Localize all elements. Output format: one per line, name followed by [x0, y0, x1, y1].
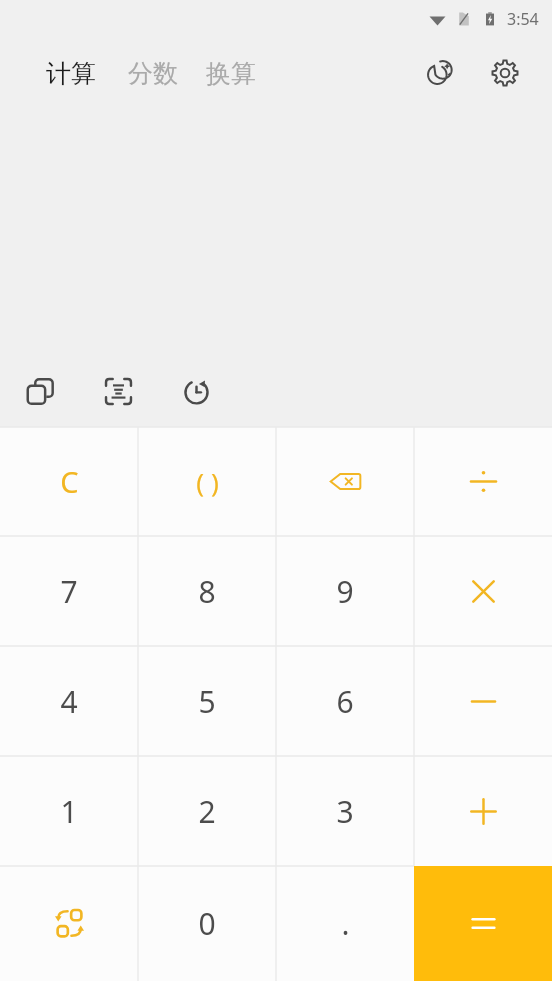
staticText: 3:54	[507, 8, 539, 30]
button[interactable]: 计算	[43, 50, 99, 97]
staticText: 计算	[46, 58, 96, 89]
staticText: 9	[336, 571, 354, 612]
button[interactable]: C	[0, 427, 138, 536]
staticText: 换算	[206, 58, 256, 89]
button[interactable]: 3	[276, 756, 414, 866]
button[interactable]: Divide	[414, 427, 552, 536]
staticText: 8	[198, 571, 216, 612]
button[interactable]: Scan	[90, 363, 147, 420]
staticText: 2	[198, 791, 216, 832]
button[interactable]: 分数	[125, 50, 181, 97]
button[interactable]: 5	[138, 646, 276, 756]
button[interactable]: ( )	[138, 427, 276, 536]
button[interactable]: 6	[276, 646, 414, 756]
button[interactable]: 4	[0, 646, 138, 756]
button[interactable]: 9	[276, 536, 414, 646]
button[interactable]: Minus	[414, 646, 552, 756]
staticText: ( )	[196, 464, 219, 499]
staticText: 分数	[128, 58, 178, 89]
button[interactable]: Multiply	[414, 536, 552, 646]
staticText: 6	[336, 681, 354, 722]
button[interactable]: 2	[138, 756, 276, 866]
button[interactable]: 换算	[203, 50, 259, 97]
button[interactable]: 8	[138, 536, 276, 646]
staticText: 1	[60, 791, 78, 832]
button[interactable]: Plus	[414, 756, 552, 866]
staticText: .	[341, 903, 350, 944]
button[interactable]: History	[168, 363, 225, 420]
staticText: 3	[336, 791, 354, 832]
button[interactable]: 0	[138, 866, 276, 981]
button[interactable]: Copy	[12, 363, 69, 420]
button[interactable]: 1	[0, 756, 138, 866]
button[interactable]: Backspace	[276, 427, 414, 536]
button[interactable]: Convert	[0, 866, 138, 981]
staticText: 5	[198, 681, 216, 722]
staticText: 0	[198, 903, 216, 944]
staticText: 7	[60, 571, 78, 612]
staticText: 4	[60, 681, 78, 722]
button[interactable]: Equals	[414, 866, 552, 981]
button[interactable]: .	[276, 866, 414, 981]
button[interactable]: 7	[0, 536, 138, 646]
staticText: C	[60, 462, 79, 501]
button[interactable]: Night mode	[416, 50, 462, 96]
button[interactable]: Settings	[482, 50, 528, 96]
